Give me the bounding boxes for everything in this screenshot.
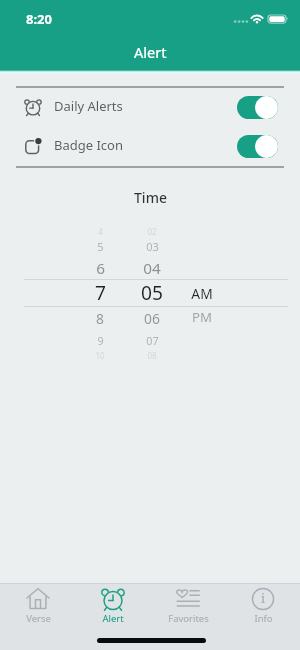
staticText: 8:20 (26, 10, 52, 28)
button[interactable]: Toggle (237, 96, 278, 119)
staticText: Time (134, 188, 167, 207)
staticText: 07 (146, 333, 159, 348)
button[interactable]: Badge Icon (0, 127, 300, 166)
staticText: 6 (96, 258, 105, 279)
staticText: Verse (26, 612, 51, 625)
staticText: 06 (144, 309, 160, 328)
staticText: 7 (95, 279, 106, 305)
staticText: AM (191, 284, 213, 303)
staticText: 08 (147, 350, 157, 361)
staticText: Badge Icon (54, 136, 123, 154)
staticText: Alert (134, 42, 167, 62)
staticText: Info (254, 612, 273, 625)
staticText: Alert (102, 612, 124, 625)
staticText: 8 (96, 309, 104, 328)
staticText: 04 (143, 258, 161, 279)
staticText: Favorites (168, 612, 209, 625)
staticText: 02 (147, 226, 157, 237)
staticText: 4 (98, 226, 103, 237)
staticText: 05 (141, 279, 163, 305)
staticText: Daily Alerts (54, 97, 123, 115)
staticText: 9 (97, 333, 104, 348)
button[interactable]: i (231, 584, 295, 632)
staticText: 03 (146, 239, 159, 254)
button[interactable]: Favorites (156, 584, 220, 632)
staticText: 10 (95, 350, 105, 361)
staticText: PM (192, 308, 212, 326)
staticText: 5 (97, 239, 104, 254)
button[interactable]: Toggle (237, 135, 278, 158)
staticText: i (261, 589, 266, 607)
button[interactable]: Alert (81, 584, 145, 632)
button[interactable]: Verse (6, 584, 70, 632)
button[interactable]: Daily Alerts (0, 88, 300, 127)
